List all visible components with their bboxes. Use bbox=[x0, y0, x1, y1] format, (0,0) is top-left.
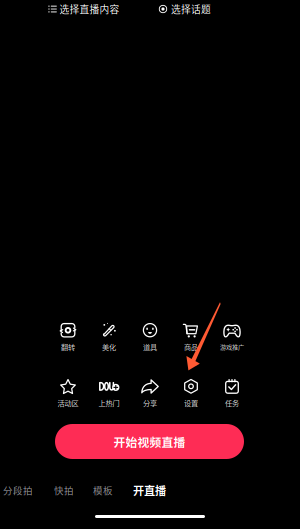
staticText: 美化 bbox=[102, 342, 116, 352]
staticText: 选择话题 bbox=[171, 2, 211, 16]
button[interactable]: 分段拍 bbox=[3, 483, 33, 497]
staticText: 开直播 bbox=[133, 482, 166, 498]
staticText: 商品 bbox=[184, 342, 198, 352]
button[interactable]: 道具 bbox=[129, 322, 170, 353]
staticText: 快拍 bbox=[54, 483, 74, 497]
staticText: 任务 bbox=[225, 398, 239, 408]
button[interactable]: 开直播 bbox=[133, 483, 166, 497]
staticText: 模板 bbox=[93, 483, 113, 497]
staticText: 开始视频直播 bbox=[113, 433, 185, 450]
staticText: 设置 bbox=[184, 398, 198, 408]
staticText: 翻转 bbox=[61, 342, 75, 352]
button[interactable]: 选择直播内容 bbox=[48, 0, 119, 18]
staticText: 选择直播内容 bbox=[59, 2, 119, 16]
button[interactable]: 选择话题 bbox=[158, 0, 211, 18]
button[interactable]: 上热门 bbox=[88, 378, 129, 409]
button[interactable]: 分享 bbox=[129, 378, 170, 409]
staticText: 道具 bbox=[143, 342, 157, 352]
staticText: 分段拍 bbox=[3, 483, 33, 497]
button[interactable]: 任务 bbox=[211, 378, 252, 409]
button[interactable]: 设置 bbox=[170, 378, 211, 409]
staticText: 活动区 bbox=[57, 398, 78, 408]
button[interactable]: 快拍 bbox=[54, 483, 74, 497]
button[interactable]: 游戏推广 bbox=[211, 322, 252, 353]
button[interactable]: 商品 bbox=[170, 322, 211, 353]
staticText: 游戏推广 bbox=[220, 342, 244, 351]
button[interactable]: 美化 bbox=[88, 322, 129, 353]
button[interactable]: 开始视频直播 bbox=[55, 424, 244, 459]
staticText: 分享 bbox=[143, 398, 157, 408]
button[interactable]: 翻转 bbox=[47, 322, 88, 353]
button[interactable]: 模板 bbox=[93, 483, 113, 497]
staticText: 上热门 bbox=[98, 398, 119, 408]
button[interactable]: 活动区 bbox=[47, 378, 88, 409]
